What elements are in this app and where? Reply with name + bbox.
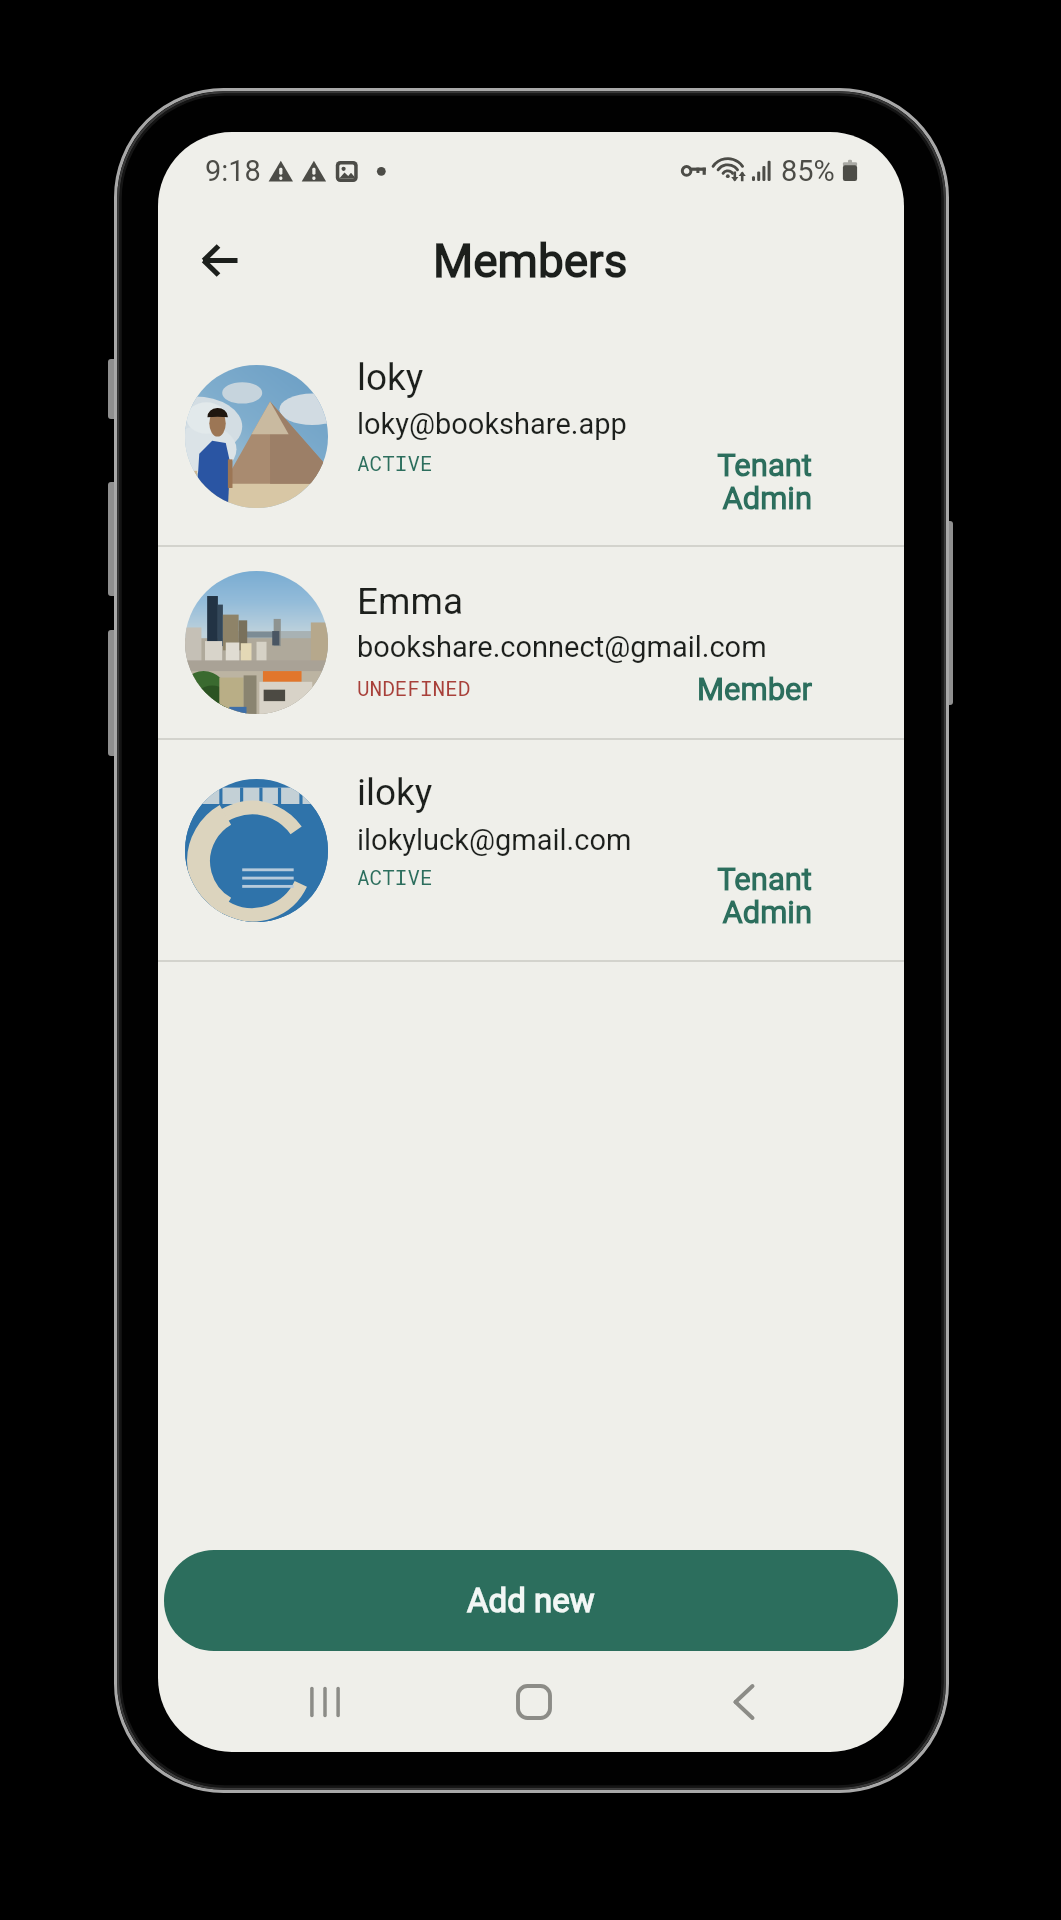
staticText: Add new (467, 1581, 595, 1620)
button[interactable]: Back (696, 1654, 792, 1750)
button[interactable]: loky (158, 326, 904, 546)
staticText: ilokyluck@gmail.com (357, 823, 632, 857)
staticText: iloky (357, 771, 433, 814)
staticText: 9:18 (205, 154, 261, 188)
staticText: UNDEFINED (357, 674, 471, 702)
staticText: ACTIVE (357, 449, 433, 477)
staticText: Members (433, 234, 628, 288)
button[interactable]: Recent apps (277, 1654, 373, 1750)
staticText: Emma (357, 580, 464, 623)
button[interactable]: Back (175, 215, 265, 305)
staticText: bookshare.connect@gmail.com (357, 630, 767, 664)
staticText: loky@bookshare.app (357, 407, 627, 441)
button[interactable]: Home (486, 1654, 582, 1750)
staticText: ACTIVE (357, 863, 433, 891)
staticText: Member (686, 671, 812, 707)
staticText: Tenant Admin (686, 447, 812, 517)
staticText: Tenant Admin (686, 861, 812, 931)
staticText: loky (357, 356, 424, 399)
button[interactable]: iloky (158, 739, 904, 961)
button[interactable]: Add new (164, 1550, 898, 1651)
button[interactable]: Emma (158, 546, 904, 739)
staticText: 85% (781, 154, 835, 188)
